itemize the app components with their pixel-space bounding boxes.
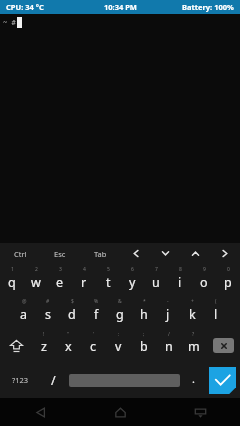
button[interactable]: ( [204, 296, 228, 328]
button[interactable]: / [40, 362, 66, 398]
button[interactable]: 8 [168, 264, 192, 296]
button[interactable]: 6 [120, 264, 144, 296]
staticText: * [143, 298, 146, 305]
button[interactable]: * [132, 296, 156, 328]
staticText: b [140, 338, 148, 355]
staticText: 4 [83, 266, 86, 273]
staticText: 8 [179, 266, 182, 273]
staticText: 6 [131, 266, 134, 273]
staticText: o [200, 274, 208, 291]
staticText: / [168, 331, 170, 338]
staticText: e [56, 274, 64, 291]
staticText: c [90, 338, 97, 355]
button[interactable]: % [84, 296, 108, 328]
staticText: Tab [94, 249, 107, 259]
staticText: z [41, 338, 47, 355]
button[interactable]: 4 [72, 264, 96, 296]
staticText: # [46, 298, 50, 305]
button[interactable]: 0 [216, 264, 240, 296]
button[interactable]: Down [150, 243, 180, 264]
staticText: l [214, 306, 218, 323]
button[interactable]: ! [32, 328, 56, 362]
button[interactable]: 1 [0, 264, 24, 296]
button[interactable]: Home [80, 398, 160, 426]
button[interactable]: ; [131, 328, 156, 362]
staticText: $ [71, 298, 74, 305]
button[interactable]: @ [12, 296, 36, 328]
staticText: @ [22, 298, 27, 305]
button[interactable]: 5 [96, 264, 120, 296]
staticText: d [68, 306, 76, 323]
staticText: 3 [59, 266, 62, 273]
button[interactable]: 3 [48, 264, 72, 296]
staticText: ( [215, 298, 217, 305]
staticText: ' [93, 331, 95, 338]
button[interactable]: Left [120, 243, 150, 264]
staticText: x [65, 338, 72, 355]
staticText: . [192, 371, 195, 386]
button[interactable]: Tab [80, 243, 120, 264]
button[interactable]: Hide keyboard [160, 398, 240, 426]
button[interactable]: 9 [192, 264, 216, 296]
staticText: 7 [155, 266, 158, 273]
staticText: ! [43, 331, 45, 338]
staticText: a [20, 306, 28, 323]
staticText: s [45, 306, 51, 323]
button[interactable]: / [156, 328, 181, 362]
button[interactable]: : [106, 328, 131, 362]
button[interactable]: ?123 [0, 362, 40, 398]
staticText: k [189, 306, 196, 323]
staticText: j [166, 306, 170, 323]
button[interactable]: ' [81, 328, 106, 362]
staticText: ?123 [12, 375, 29, 385]
button[interactable]: - [156, 296, 180, 328]
button[interactable]: Shift [0, 328, 32, 362]
button[interactable]: Back [0, 398, 80, 426]
staticText: f [94, 306, 99, 323]
button[interactable]: $ [60, 296, 84, 328]
staticText: 10:34 PM [104, 2, 137, 12]
button[interactable]: Backspace [206, 328, 240, 362]
staticText: q [8, 274, 16, 291]
button[interactable]: Enter [204, 362, 240, 398]
button[interactable]: Right [210, 243, 240, 264]
staticText: t [106, 274, 111, 291]
button[interactable]: Ctrl [0, 243, 40, 264]
button[interactable]: + [180, 296, 204, 328]
staticText: p [224, 274, 232, 291]
staticText: Ctrl [14, 249, 27, 259]
staticText: 1 [11, 266, 14, 273]
button[interactable]: . [182, 362, 204, 398]
button[interactable]: 7 [144, 264, 168, 296]
staticText: % [94, 298, 99, 305]
staticText: 5 [107, 266, 110, 273]
staticText: n [165, 338, 173, 355]
staticText: y [129, 274, 136, 291]
staticText: 9 [203, 266, 206, 273]
staticText: CPU: 34 °C [6, 2, 44, 12]
button[interactable]: " [56, 328, 81, 362]
staticText: g [116, 306, 124, 323]
button[interactable]: Up [180, 243, 210, 264]
staticText: - [167, 298, 169, 305]
staticText: w [31, 274, 41, 291]
staticText: / [51, 372, 56, 389]
button[interactable]: ? [181, 328, 206, 362]
button[interactable]: Esc [40, 243, 80, 264]
staticText: v [115, 338, 122, 355]
staticText: + [191, 298, 194, 305]
staticText: ; [143, 331, 145, 338]
staticText: ? [192, 331, 195, 338]
staticText: i [178, 274, 182, 291]
staticText: Battery: 100% [182, 2, 234, 12]
button[interactable]: Space [66, 362, 182, 398]
button[interactable]: 2 [24, 264, 48, 296]
button[interactable]: # [36, 296, 60, 328]
staticText: : [118, 331, 120, 338]
staticText: Esc [54, 249, 66, 259]
button[interactable]: & [108, 296, 132, 328]
staticText: & [118, 298, 122, 305]
staticText: 0 [227, 266, 230, 273]
staticText: r [81, 274, 87, 291]
staticText: m [188, 338, 200, 355]
